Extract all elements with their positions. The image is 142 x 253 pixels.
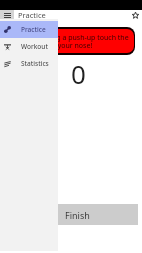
button[interactable]: Finish [4, 204, 138, 225]
staticText: 0 [71, 56, 86, 91]
staticText: Finish [65, 209, 90, 221]
button[interactable]: Statistics [0, 55, 58, 72]
staticText: While doing a push-up touch the your nos… [21, 33, 129, 50]
button[interactable]: Open navigation menu [0, 10, 14, 20]
button[interactable]: Practice [0, 21, 58, 38]
button[interactable]: Workout [0, 38, 58, 55]
staticText: Practice [18, 10, 46, 20]
staticText: Workout [21, 42, 48, 51]
button[interactable]: While doing a push-up touch the your nos… [11, 27, 135, 55]
staticText: Statistics [21, 59, 49, 68]
staticText: Practice [21, 25, 46, 34]
button[interactable]: Favorite [128, 10, 142, 20]
